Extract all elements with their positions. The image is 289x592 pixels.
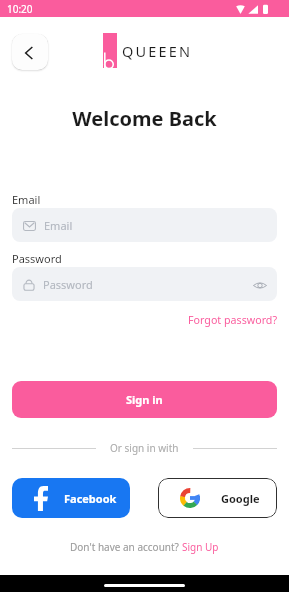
button[interactable]: Facebook <box>12 478 130 518</box>
button[interactable]: Email <box>12 208 277 242</box>
staticText: Password <box>43 277 93 292</box>
staticText: Facebook <box>64 491 117 506</box>
staticText: Sign Up <box>182 540 219 554</box>
button[interactable]: Don't have an account? <box>0 540 289 554</box>
staticText: Email <box>12 192 41 207</box>
button[interactable]: Forgot password? <box>188 313 278 328</box>
staticText: Email <box>44 218 73 233</box>
staticText: Or sign in with <box>110 441 179 455</box>
button[interactable]: Sign in <box>12 381 277 418</box>
staticText: Google <box>221 491 260 506</box>
button[interactable]: Show password <box>252 277 268 293</box>
button[interactable]: Back <box>12 34 48 70</box>
staticText: 10:20 <box>7 2 33 16</box>
staticText: Don't have an account? <box>70 540 182 554</box>
staticText: Password <box>12 251 62 266</box>
staticText: QUEEEN <box>122 41 193 61</box>
staticText: Sign in <box>126 392 163 407</box>
staticText: Welcome Back <box>0 105 289 132</box>
button[interactable]: Google <box>158 478 277 518</box>
button[interactable]: Password <box>12 267 277 301</box>
